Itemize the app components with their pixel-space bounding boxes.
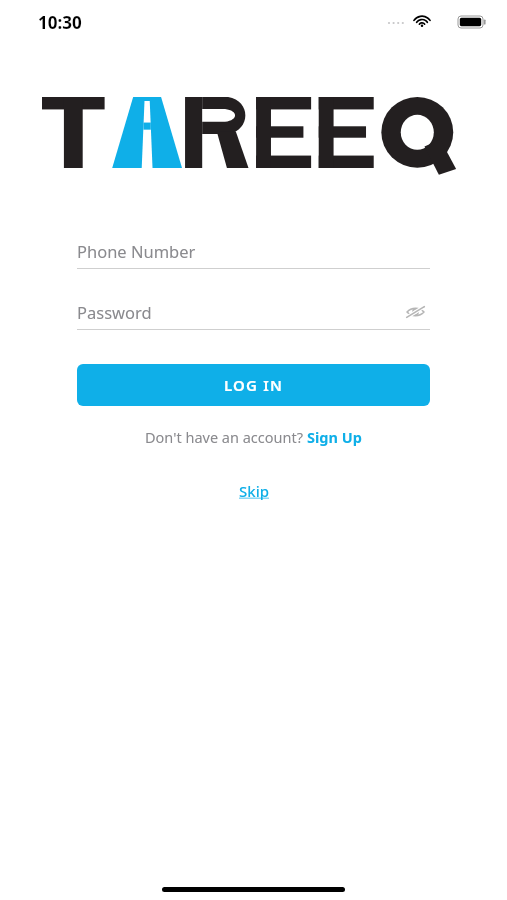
staticText: LOG IN — [224, 375, 284, 395]
button[interactable]: Show password — [400, 297, 430, 327]
staticText: Sign Up — [307, 427, 362, 447]
button[interactable]: LOG IN — [77, 364, 430, 406]
button[interactable]: Password — [77, 295, 430, 329]
staticText: Skip — [239, 481, 269, 501]
staticText: Don't have an account? — [145, 427, 307, 447]
button[interactable]: Phone Number — [77, 234, 430, 268]
button[interactable]: Sign Up — [307, 427, 362, 447]
button[interactable]: Skip — [229, 478, 279, 504]
staticText: 10:30 — [38, 11, 82, 34]
staticText: Phone Number — [77, 240, 196, 262]
staticText: Password — [77, 301, 152, 323]
